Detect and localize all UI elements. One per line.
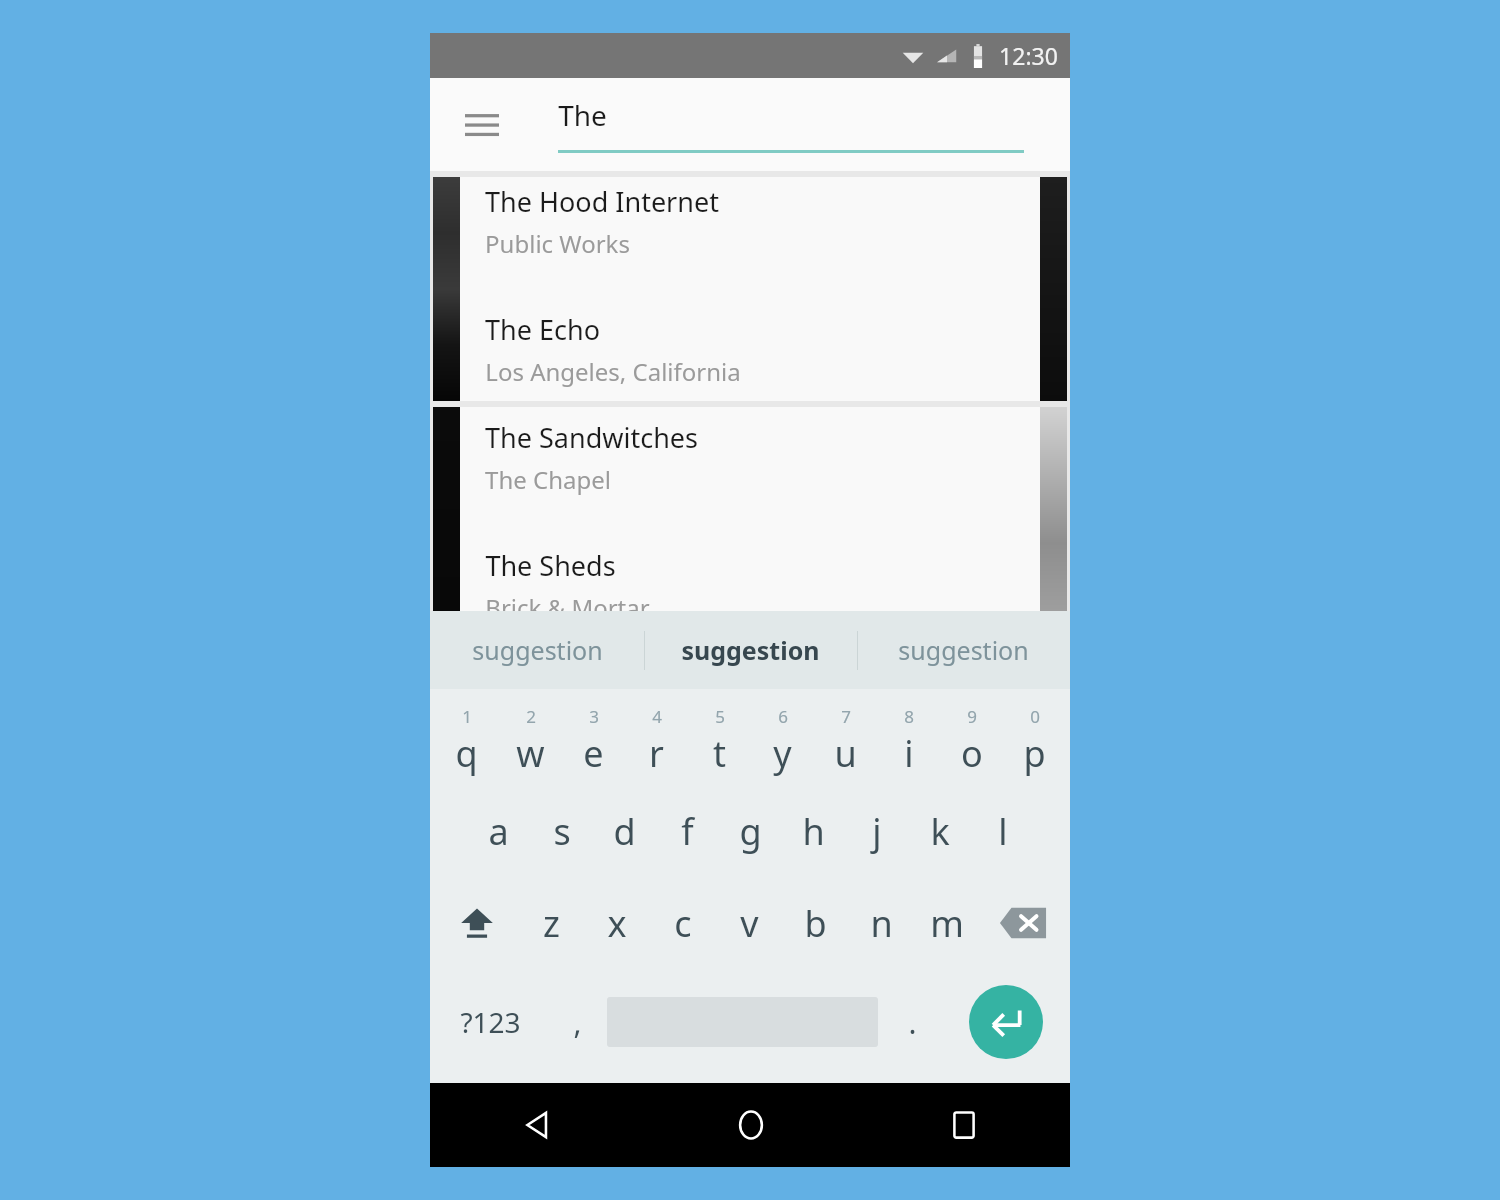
- button[interactable]: f: [656, 785, 719, 877]
- staticText: The Sheds: [485, 547, 616, 584]
- staticText: d: [613, 807, 636, 856]
- staticText: o: [961, 729, 983, 778]
- button[interactable]: ?123: [434, 969, 547, 1075]
- staticText: The Echo: [485, 311, 600, 348]
- button[interactable]: m: [914, 877, 980, 969]
- staticText: 8: [904, 705, 914, 728]
- button[interactable]: suggestion: [644, 611, 857, 689]
- button[interactable]: s: [530, 785, 593, 877]
- staticText: x: [607, 899, 627, 948]
- staticText: e: [583, 729, 604, 778]
- staticText: g: [739, 807, 762, 856]
- staticText: m: [930, 899, 964, 948]
- button[interactable]: suggestion: [430, 611, 644, 689]
- staticText: a: [488, 807, 509, 856]
- staticText: The Chapel: [485, 463, 611, 496]
- button[interactable]: k: [908, 785, 971, 877]
- staticText: 12:30: [999, 40, 1058, 71]
- button[interactable]: Shift: [434, 877, 519, 969]
- button[interactable]: c: [650, 877, 716, 969]
- button[interactable]: 0: [1003, 697, 1066, 785]
- button[interactable]: 5: [688, 697, 751, 785]
- button[interactable]: g: [719, 785, 782, 877]
- staticText: suggestion: [681, 633, 820, 667]
- staticText: 9: [967, 705, 977, 728]
- button[interactable]: The Hood Internet: [430, 177, 1070, 401]
- button[interactable]: j: [845, 785, 908, 877]
- button[interactable]: .: [878, 969, 946, 1075]
- button[interactable]: Home: [644, 1083, 857, 1167]
- button[interactable]: b: [782, 877, 848, 969]
- staticText: l: [998, 807, 1008, 856]
- staticText: Public Works: [485, 227, 630, 260]
- button[interactable]: 1: [434, 697, 498, 785]
- button[interactable]: 3: [562, 697, 625, 785]
- staticText: s: [553, 807, 571, 856]
- button[interactable]: ,: [547, 969, 607, 1075]
- button[interactable]: Backspace: [980, 877, 1066, 969]
- button[interactable]: z: [519, 877, 584, 969]
- staticText: 2: [526, 705, 536, 728]
- staticText: 0: [1030, 705, 1040, 728]
- button[interactable]: v: [716, 877, 782, 969]
- staticText: b: [804, 899, 827, 948]
- staticText: r: [649, 729, 664, 778]
- button[interactable]: Back: [430, 1083, 644, 1167]
- staticText: u: [834, 729, 857, 778]
- button[interactable]: n: [848, 877, 914, 969]
- button[interactable]: h: [782, 785, 845, 877]
- staticText: 3: [589, 705, 599, 728]
- staticText: y: [773, 729, 792, 778]
- button[interactable]: 8: [877, 697, 940, 785]
- staticText: 5: [715, 705, 725, 728]
- staticText: v: [740, 899, 759, 948]
- staticText: q: [455, 729, 478, 778]
- button[interactable]: 6: [751, 697, 814, 785]
- button[interactable]: Recent apps: [857, 1083, 1070, 1167]
- staticText: ?123: [460, 1003, 521, 1041]
- staticText: w: [516, 729, 545, 778]
- staticText: The Sandwitches: [485, 419, 698, 456]
- staticText: k: [930, 807, 950, 856]
- button[interactable]: 2: [498, 697, 562, 785]
- button[interactable]: 4: [625, 697, 688, 785]
- staticText: t: [713, 729, 726, 778]
- button[interactable]: suggestion: [857, 611, 1070, 689]
- staticText: c: [674, 899, 692, 948]
- staticText: suggestion: [472, 633, 603, 667]
- staticText: The Hood Internet: [485, 183, 719, 220]
- staticText: p: [1023, 729, 1046, 778]
- staticText: Los Angeles, California: [485, 355, 741, 388]
- staticText: 4: [652, 705, 662, 728]
- staticText: 7: [841, 705, 851, 728]
- button[interactable]: Open navigation drawer: [456, 99, 508, 151]
- staticText: suggestion: [898, 633, 1029, 667]
- staticText: 1: [462, 705, 472, 728]
- button[interactable]: l: [971, 785, 1034, 877]
- staticText: ,: [573, 1002, 582, 1043]
- button[interactable]: x: [584, 877, 650, 969]
- staticText: Brick & Mortar: [485, 591, 650, 611]
- button[interactable]: d: [593, 785, 656, 877]
- staticText: The: [558, 96, 607, 134]
- staticText: i: [904, 729, 914, 778]
- staticText: f: [681, 807, 694, 856]
- staticText: z: [543, 899, 560, 948]
- button[interactable]: 7: [814, 697, 877, 785]
- button[interactable]: The Sandwitches: [430, 407, 1070, 611]
- staticText: n: [870, 899, 893, 948]
- button[interactable]: a: [467, 785, 530, 877]
- staticText: j: [872, 807, 882, 856]
- staticText: h: [802, 807, 825, 856]
- staticText: 6: [778, 705, 788, 728]
- staticText: .: [908, 1002, 917, 1043]
- button[interactable]: Enter: [969, 985, 1043, 1059]
- button[interactable]: 9: [940, 697, 1003, 785]
